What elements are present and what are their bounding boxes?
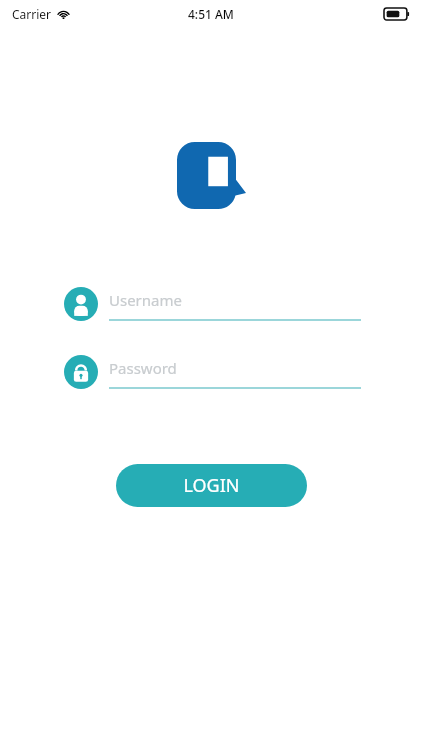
button[interactable]: Password [64,350,361,394]
button[interactable]: Username [64,282,361,326]
staticText: LOGIN [183,473,240,498]
staticText: 4:51 AM [188,6,234,22]
other: Username [64,287,98,321]
staticText: Password [109,358,177,378]
staticText: Carrier [12,6,52,22]
other: Password [64,355,98,389]
staticText: Username [109,290,182,310]
button[interactable]: LOGIN [116,464,307,507]
